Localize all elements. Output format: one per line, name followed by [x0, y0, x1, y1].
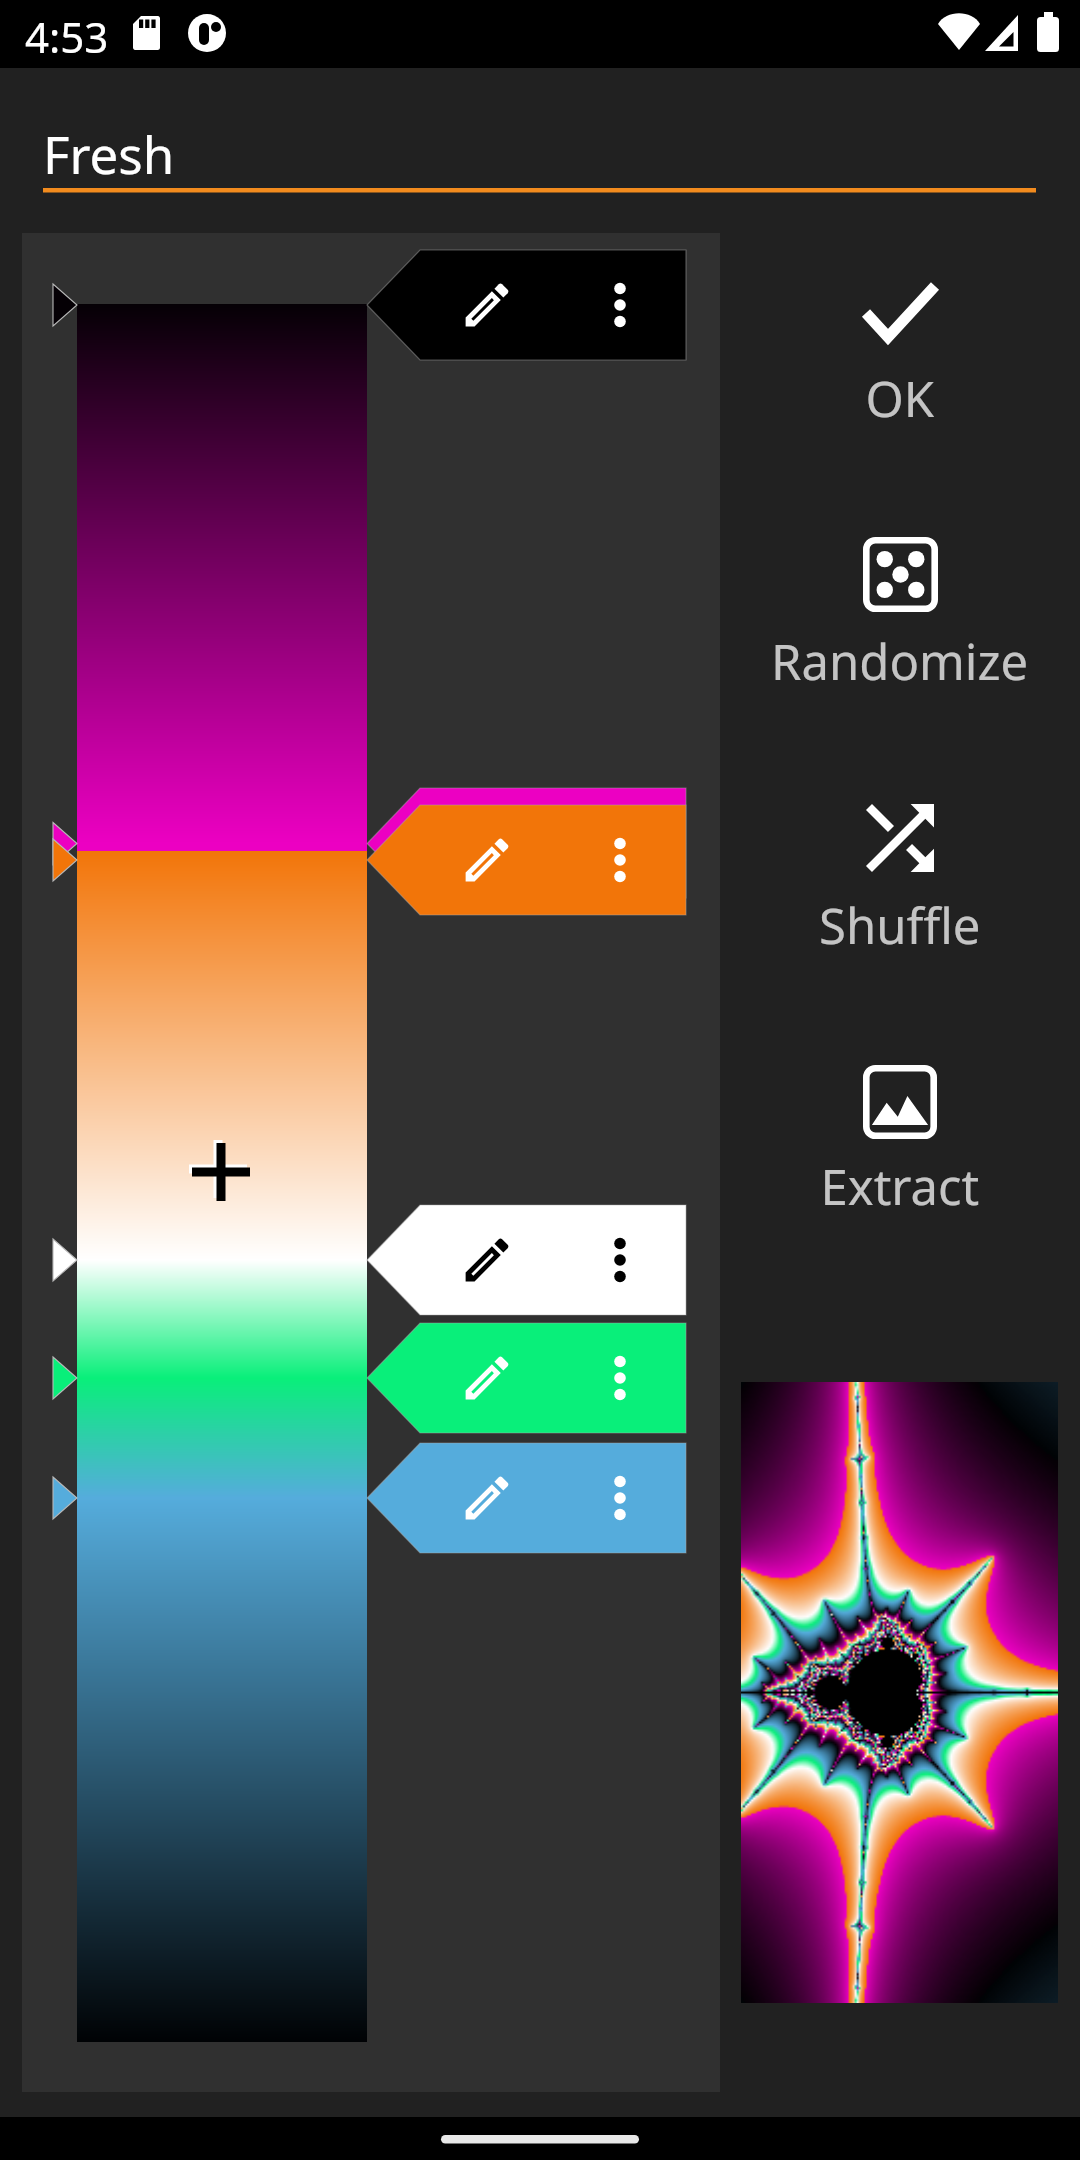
button[interactable]: Move Magenta stop	[48, 820, 80, 868]
button[interactable]: More options for Orange colour	[563, 833, 653, 889]
button[interactable]: More options for Magenta colour	[563, 816, 653, 872]
button[interactable]: Edit Blue colour	[420, 1471, 530, 1527]
button[interactable]: Extract	[800, 1055, 1000, 1215]
button[interactable]: Fractal preview	[741, 1382, 1058, 2003]
button[interactable]: Move Black stop	[48, 281, 80, 329]
button[interactable]: More options for Green colour	[563, 1351, 653, 1407]
button[interactable]: Edit Green colour	[420, 1351, 530, 1407]
button[interactable]: Shuffle	[800, 794, 1000, 954]
button[interactable]: Move Blue stop	[48, 1474, 80, 1522]
button[interactable]: More options for Black colour	[563, 278, 653, 334]
button[interactable]: Move White stop	[48, 1236, 80, 1284]
button[interactable]: Edit Magenta colour	[420, 816, 530, 872]
button[interactable]: Move Orange stop	[48, 836, 80, 884]
button[interactable]: More options for Blue colour	[563, 1471, 653, 1527]
button[interactable]: Edit White colour	[420, 1233, 530, 1289]
button[interactable]: Palette name Fresh	[43, 104, 1036, 194]
button[interactable]: More options for White colour	[563, 1233, 653, 1289]
button[interactable]: Edit Orange colour	[420, 833, 530, 889]
button[interactable]: Add colour stop	[77, 304, 367, 2042]
button[interactable]: Randomize	[800, 527, 1000, 687]
button[interactable]: Move Green stop	[48, 1354, 80, 1402]
button[interactable]: Edit Black colour	[420, 278, 530, 334]
button[interactable]: OK	[800, 272, 1000, 422]
